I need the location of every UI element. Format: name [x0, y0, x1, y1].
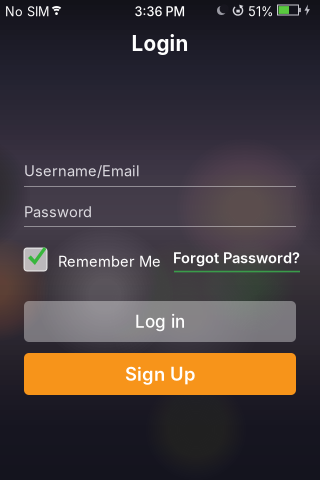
staticText: Login — [131, 31, 188, 56]
button[interactable]: Log in — [24, 301, 296, 342]
button[interactable]: Remember Me — [24, 248, 161, 271]
staticText: 3:36 PM — [134, 4, 185, 19]
button[interactable]: Sign Up — [24, 353, 296, 395]
button[interactable]: Password — [24, 203, 296, 227]
staticText: Remember Me — [58, 253, 161, 270]
staticText: Password — [24, 203, 92, 221]
staticText: Forgot Password? — [173, 249, 300, 267]
staticText: Sign Up — [125, 363, 195, 385]
button[interactable]: Forgot Password? — [173, 249, 300, 272]
staticText: No SIM — [5, 4, 49, 19]
staticText: Log in — [135, 311, 185, 332]
button[interactable]: Username/Email — [24, 162, 296, 187]
staticText: Username/Email — [24, 162, 140, 180]
staticText: 51% — [248, 4, 273, 19]
